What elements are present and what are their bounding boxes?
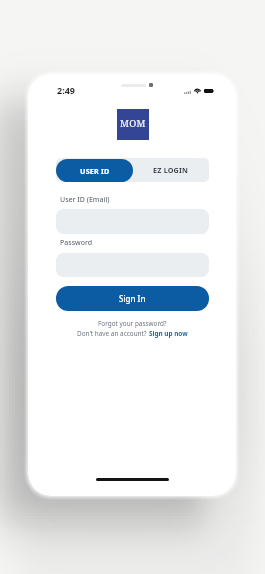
button[interactable]: EZ LOGIN	[133, 158, 209, 182]
button[interactable]: Sign up now	[149, 329, 188, 338]
staticText: EZ LOGIN	[153, 165, 189, 175]
staticText: 2:49	[57, 84, 75, 96]
button[interactable]: USER ID	[56, 159, 133, 182]
staticText: User ID (Email)	[60, 195, 110, 205]
staticText: MOM	[120, 117, 146, 130]
staticText: Don't have an account?	[77, 329, 149, 338]
button[interactable]: Sign In	[56, 286, 209, 311]
staticText: USER ID	[80, 166, 110, 176]
staticText: Sign In	[119, 293, 146, 304]
staticText: Password	[60, 238, 93, 248]
button[interactable]: Forgot your password?	[98, 319, 167, 328]
